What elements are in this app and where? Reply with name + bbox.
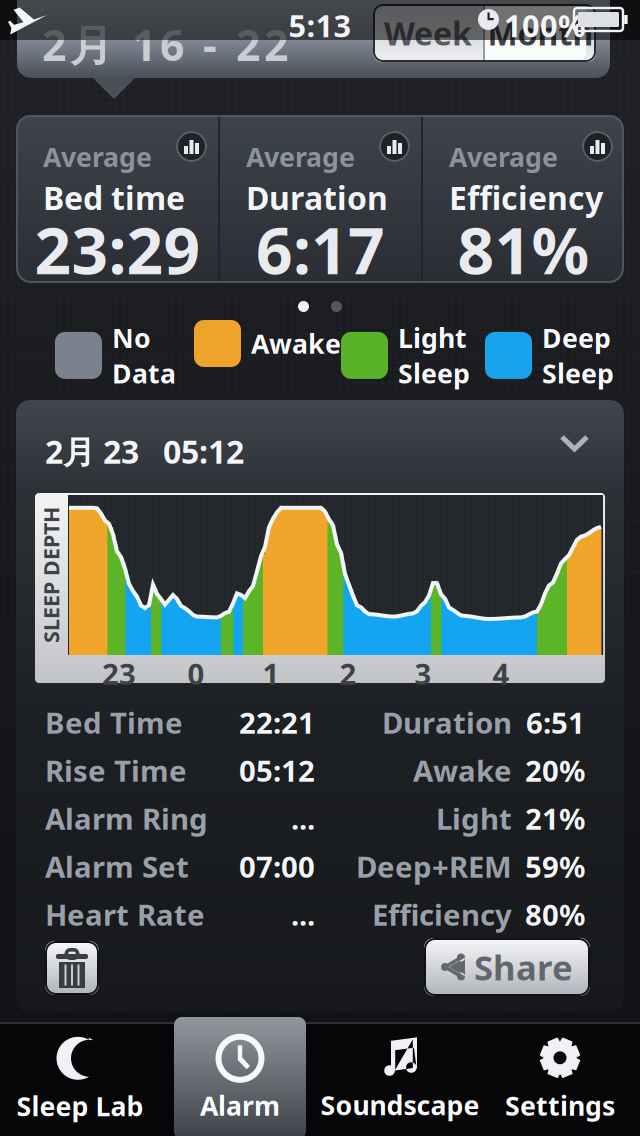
button[interactable]: Settings <box>480 1026 640 1134</box>
staticText: Settings <box>505 1088 615 1123</box>
button[interactable]: Soundscape <box>312 1026 488 1134</box>
staticText: 3 <box>414 654 431 693</box>
staticText: 0 <box>187 654 204 693</box>
staticText: Heart Rate <box>45 895 205 934</box>
button[interactable]: Alarm <box>174 1017 306 1136</box>
staticText: 100% <box>504 5 586 46</box>
staticText: Deep+REM <box>356 847 512 886</box>
staticText: Week <box>384 12 472 54</box>
staticText: No <box>112 320 151 355</box>
staticText: Sleep Lab <box>16 1088 143 1124</box>
button[interactable]: Sleep Lab <box>0 1026 160 1134</box>
staticText: Sleep <box>398 355 470 391</box>
button[interactable]: Statistics <box>582 131 613 162</box>
staticText: Average <box>246 139 355 174</box>
staticText: 6:51 <box>526 703 585 742</box>
staticText: 2月 23 05:12 <box>45 430 244 472</box>
button[interactable]: Statistics <box>379 131 410 162</box>
staticText: 07:00 <box>239 847 315 886</box>
staticText: Awake <box>413 751 512 790</box>
button[interactable]: Delete <box>45 941 99 995</box>
staticText: 21% <box>525 799 585 838</box>
staticText: Alarm <box>200 1088 280 1123</box>
button[interactable]: Collapse <box>548 423 601 463</box>
staticText: 4 <box>492 654 509 693</box>
staticText: 05:12 <box>239 751 315 790</box>
staticText: Average <box>449 139 558 174</box>
staticText: Deep <box>542 320 611 355</box>
staticText: Duration <box>382 703 512 742</box>
staticText: 1 <box>262 654 279 693</box>
staticText: Data <box>112 355 176 391</box>
staticText: 81% <box>457 207 589 292</box>
staticText: 2月 16 - 22 <box>42 16 288 73</box>
staticText: 5:13 <box>288 5 351 46</box>
staticText: SLEEP DEPTH <box>0 561 119 589</box>
staticText: 6:17 <box>256 207 385 292</box>
button[interactable]: Statistics <box>176 131 207 162</box>
staticText: Duration <box>246 176 388 219</box>
staticText: Light <box>436 799 512 838</box>
staticText: Sleep <box>542 355 614 391</box>
staticText: Soundscape <box>320 1087 479 1123</box>
staticText: Bed Time <box>45 703 183 742</box>
staticText: 23:29 <box>34 207 200 292</box>
staticText: ... <box>291 895 315 934</box>
staticText: 59% <box>525 847 585 886</box>
staticText: Alarm Set <box>45 847 189 886</box>
button[interactable]: Month <box>485 4 596 62</box>
staticText: Average <box>43 139 152 174</box>
staticText: 23 <box>102 654 136 693</box>
staticText: Efficiency <box>449 176 603 219</box>
staticText: Bed time <box>43 176 185 219</box>
staticText: Light <box>398 320 467 355</box>
staticText: Share <box>474 944 573 990</box>
button[interactable]: Week <box>373 4 483 62</box>
staticText: 20% <box>525 751 585 790</box>
staticText: Month <box>487 12 593 54</box>
staticText: Alarm Ring <box>45 799 208 838</box>
button[interactable]: Share <box>424 938 590 996</box>
staticText: ... <box>291 799 315 838</box>
staticText: 80% <box>525 895 585 934</box>
staticText: 2 <box>339 654 356 693</box>
staticText: Awake <box>251 326 341 361</box>
staticText: Efficiency <box>372 895 512 934</box>
staticText: Rise Time <box>45 751 187 790</box>
staticText: 22:21 <box>239 703 315 742</box>
